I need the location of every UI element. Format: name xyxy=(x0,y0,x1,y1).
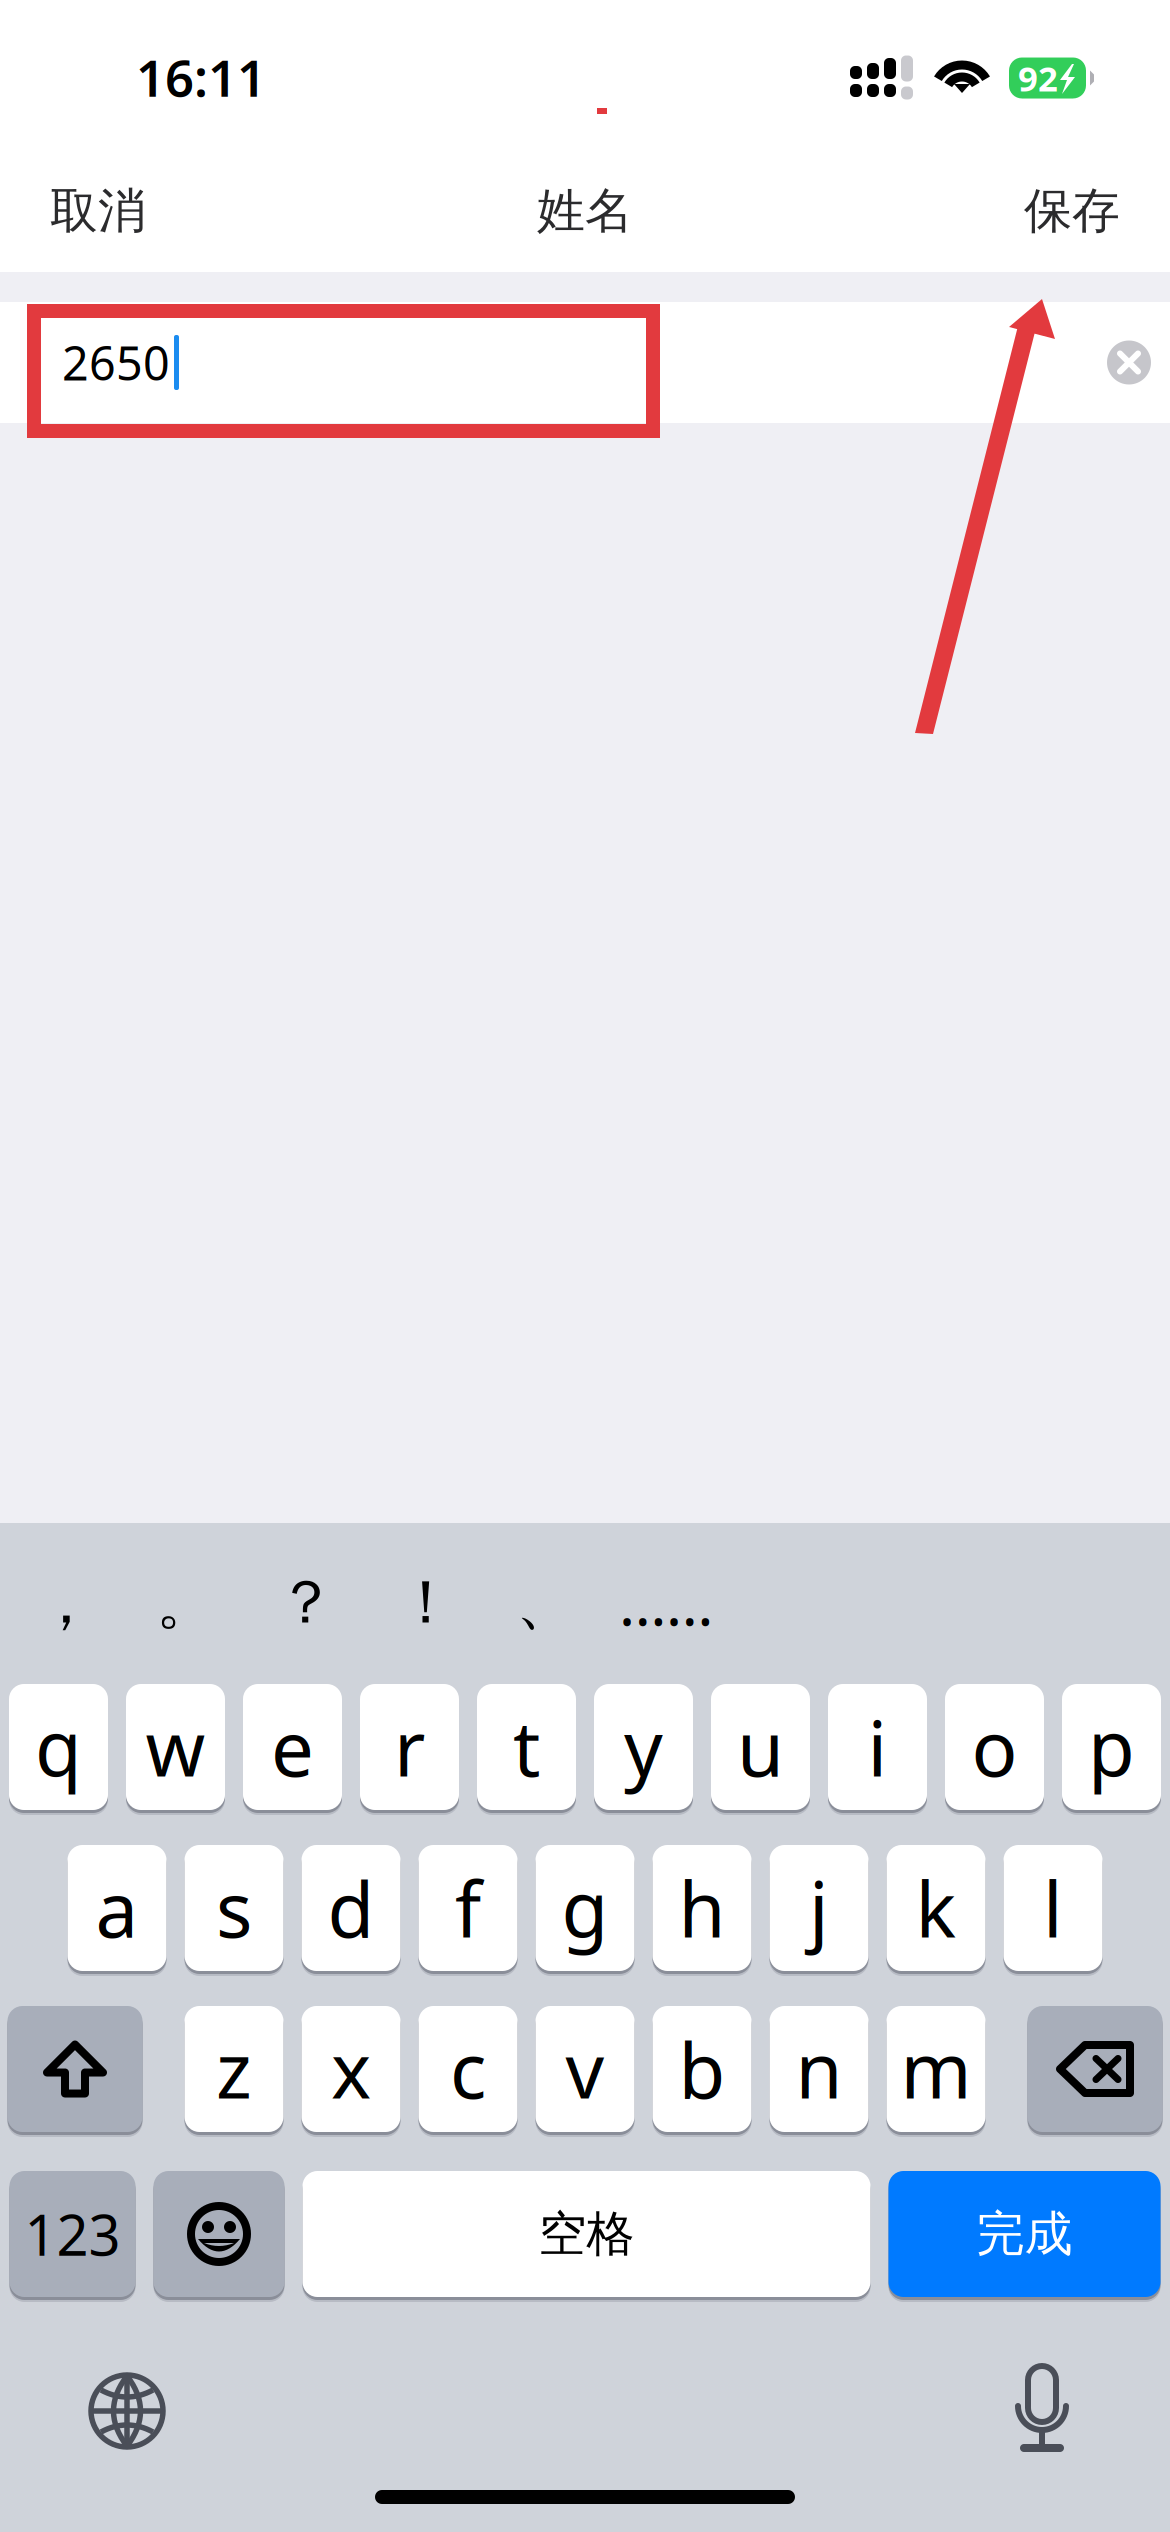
staticText: u xyxy=(737,1696,784,1797)
staticText: a xyxy=(95,1857,138,1958)
staticText: i xyxy=(867,1696,887,1797)
staticText: b xyxy=(678,2018,725,2119)
button[interactable]: n xyxy=(769,2003,868,2134)
staticText: p xyxy=(1088,1696,1135,1797)
button[interactable]: ？ xyxy=(246,1542,366,1662)
staticText: 16:11 xyxy=(136,43,266,111)
button[interactable]: c xyxy=(418,2003,517,2134)
button[interactable]: w xyxy=(126,1681,225,1812)
staticText: ？ xyxy=(276,1566,336,1639)
button[interactable]: 完成 xyxy=(888,2168,1160,2299)
staticText: s xyxy=(216,1857,252,1958)
button[interactable]: Delete xyxy=(1027,2003,1162,2134)
button[interactable]: k xyxy=(886,1842,985,1973)
button[interactable]: b xyxy=(652,2003,751,2134)
staticText: k xyxy=(915,1857,956,1958)
button[interactable]: 123 xyxy=(9,2168,135,2299)
button[interactable]: …… xyxy=(606,1542,726,1662)
staticText: d xyxy=(327,1857,374,1958)
button[interactable]: o xyxy=(945,1681,1044,1812)
staticText: j xyxy=(809,1857,829,1958)
staticText: 姓名 xyxy=(537,181,633,240)
button[interactable]: q xyxy=(9,1681,108,1812)
staticText: 取消 xyxy=(50,181,146,240)
button[interactable]: j xyxy=(769,1842,868,1973)
button[interactable]: d xyxy=(301,1842,400,1973)
button[interactable]: i xyxy=(828,1681,927,1812)
staticText: 。 xyxy=(156,1566,216,1639)
staticText: r xyxy=(394,1696,425,1797)
staticText: o xyxy=(971,1696,1017,1797)
staticText: f xyxy=(455,1857,481,1958)
staticText: 123 xyxy=(24,2197,120,2271)
button[interactable]: t xyxy=(477,1681,576,1812)
staticText: g xyxy=(561,1857,608,1958)
button[interactable]: Next keyboard xyxy=(68,2343,186,2461)
button[interactable]: x xyxy=(301,2003,400,2134)
button[interactable]: a xyxy=(67,1842,166,1973)
button[interactable]: s xyxy=(184,1842,283,1973)
button[interactable]: Emoji keyboard xyxy=(153,2168,284,2299)
button[interactable]: 空格 xyxy=(302,2168,870,2299)
staticText: c xyxy=(450,2018,486,2119)
button[interactable]: ！ xyxy=(366,1542,486,1662)
button[interactable]: m xyxy=(886,2003,985,2134)
staticText: e xyxy=(271,1696,314,1797)
button[interactable]: ， xyxy=(6,1542,126,1662)
staticText: l xyxy=(1043,1857,1063,1958)
staticText: ， xyxy=(36,1566,96,1639)
button[interactable]: 。 xyxy=(126,1542,246,1662)
button[interactable]: g xyxy=(535,1842,634,1973)
button[interactable]: e xyxy=(243,1681,342,1812)
button[interactable]: f xyxy=(418,1842,517,1973)
staticText: 空格 xyxy=(538,2204,634,2263)
button[interactable]: l xyxy=(1003,1842,1102,1973)
button[interactable]: u xyxy=(711,1681,810,1812)
staticText: w xyxy=(145,1696,205,1797)
button[interactable]: Dictation xyxy=(995,2358,1089,2446)
staticText: v xyxy=(565,2018,604,2119)
staticText: z xyxy=(216,2018,252,2119)
button[interactable]: p xyxy=(1062,1681,1161,1812)
button[interactable]: 保存 xyxy=(1006,159,1138,262)
staticText: 完成 xyxy=(976,2204,1072,2263)
staticText: 保存 xyxy=(1024,181,1120,240)
staticText: h xyxy=(678,1857,725,1958)
staticText: 2650 xyxy=(62,331,170,393)
staticText: x xyxy=(331,2018,371,2119)
button[interactable]: h xyxy=(652,1842,751,1973)
staticText: ！ xyxy=(396,1566,456,1639)
button[interactable]: Shift xyxy=(7,2003,142,2134)
staticText: n xyxy=(795,2018,842,2119)
button[interactable]: 取消 xyxy=(32,159,164,262)
button[interactable]: 、 xyxy=(486,1542,606,1662)
button[interactable]: v xyxy=(535,2003,634,2134)
button[interactable]: r xyxy=(360,1681,459,1812)
staticText: t xyxy=(513,1696,540,1797)
staticText: m xyxy=(900,2018,971,2119)
staticText: 92 xyxy=(1018,55,1058,101)
staticText: y xyxy=(624,1696,663,1797)
staticText: q xyxy=(35,1696,82,1797)
button[interactable]: z xyxy=(184,2003,283,2134)
button[interactable]: y xyxy=(594,1681,693,1812)
button[interactable]: Clear text xyxy=(1083,316,1170,408)
staticText: …… xyxy=(619,1563,713,1642)
staticText: 、 xyxy=(516,1566,576,1639)
